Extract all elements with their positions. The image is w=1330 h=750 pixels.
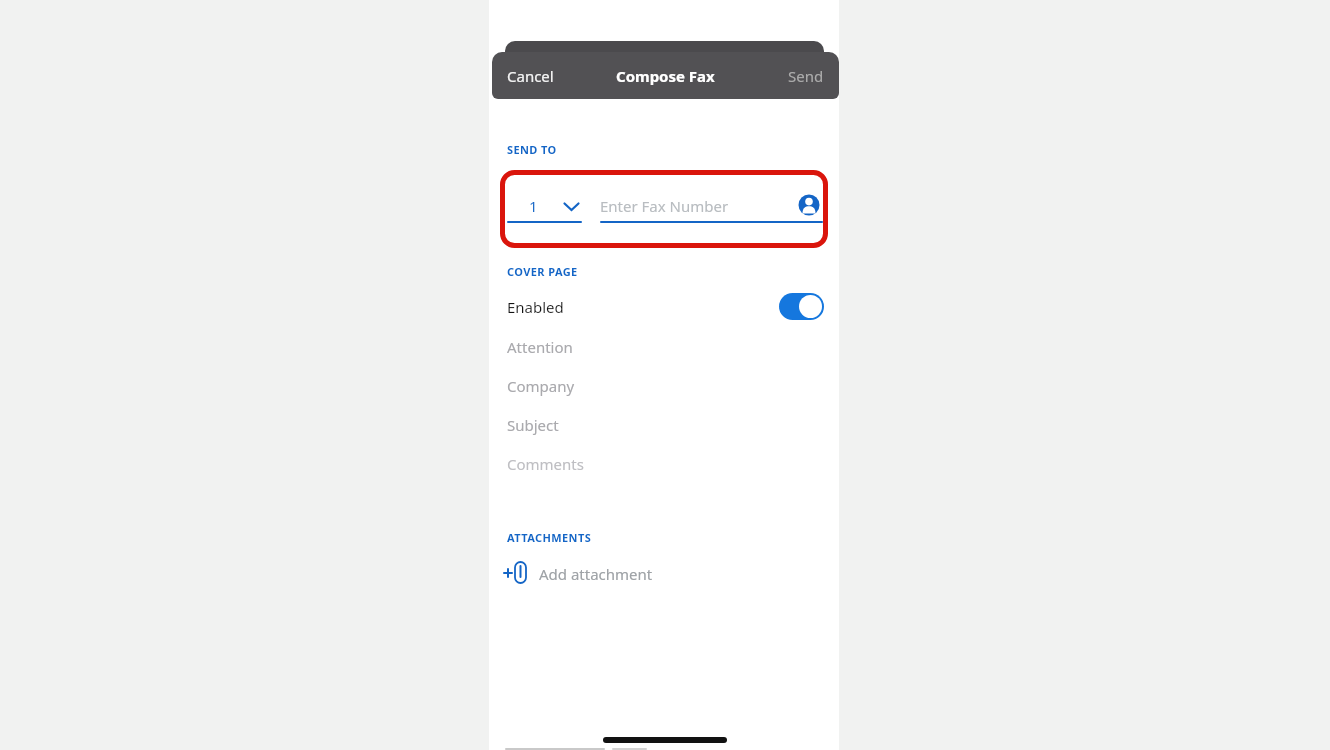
staticText: 1 <box>529 196 538 216</box>
button[interactable]: Send <box>788 66 824 86</box>
button[interactable]: 1 <box>507 195 583 223</box>
button[interactable]: Subject <box>507 415 559 435</box>
button[interactable]: Add attachment <box>500 558 700 588</box>
staticText: Enabled <box>507 297 564 317</box>
staticText: Add attachment <box>539 564 653 584</box>
button[interactable]: Enter Fax Number <box>600 196 729 216</box>
staticText: SEND TO <box>507 142 557 157</box>
staticText: Compose Fax <box>616 66 715 86</box>
button[interactable]: Attention <box>507 337 573 357</box>
button[interactable]: Comments <box>507 454 584 474</box>
button[interactable]: Company <box>507 376 575 396</box>
button[interactable] <box>779 293 824 320</box>
staticText: ATTACHMENTS <box>507 530 592 545</box>
button[interactable]: Cancel <box>507 66 554 86</box>
staticText: COVER PAGE <box>507 264 578 279</box>
